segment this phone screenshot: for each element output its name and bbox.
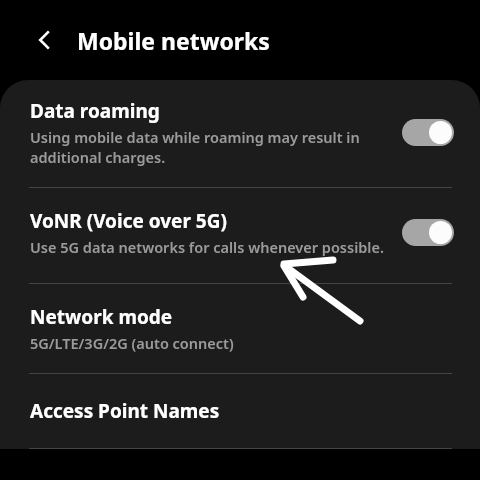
staticText: Mobile networks bbox=[77, 25, 270, 56]
staticText: Data roaming bbox=[30, 98, 160, 124]
button[interactable]: Network mode bbox=[0, 284, 480, 373]
staticText: Access Point Names bbox=[30, 398, 220, 424]
staticText: Use 5G data networks for calls whenever … bbox=[30, 237, 384, 257]
button[interactable]: Toggle switch, on bbox=[402, 219, 454, 246]
button[interactable]: VoNR (Voice over 5G) bbox=[0, 188, 480, 271]
staticText: 5G/LTE/3G/2G (auto connect) bbox=[30, 333, 234, 353]
button[interactable]: Access Point Names bbox=[0, 374, 480, 448]
button[interactable]: Data roaming bbox=[0, 80, 480, 181]
button[interactable]: Toggle switch, on bbox=[402, 119, 454, 146]
button[interactable]: Back bbox=[22, 17, 68, 63]
staticText: VoNR (Voice over 5G) bbox=[30, 208, 227, 234]
staticText: Network mode bbox=[30, 304, 173, 330]
staticText: Using mobile data while roaming may resu… bbox=[30, 127, 388, 167]
